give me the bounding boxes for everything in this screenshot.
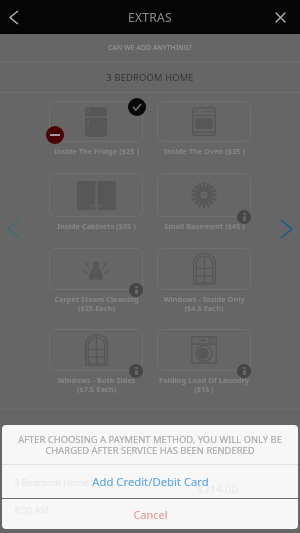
button[interactable]: Inside Cabinets ($35 ) — [49, 173, 143, 231]
staticText: AFTER CHOOSING A PAYMENT METHOD, YOU WIL… — [18, 433, 282, 456]
button[interactable]: More information — [237, 364, 251, 378]
button[interactable]: Remove — [46, 126, 64, 144]
button[interactable]: Inside The Oven ($35 ) — [157, 101, 251, 156]
staticText: Windows - Both Sides ($7.5 Each) — [57, 375, 136, 394]
staticText: Inside Cabinets ($35 ) — [57, 221, 136, 231]
staticText: Small Basement ($45 ) — [164, 221, 245, 231]
button[interactable]: More information — [49, 329, 143, 394]
staticText: Carpet Steam Cleaning ($25 Each) — [54, 294, 139, 313]
button[interactable]: More information — [157, 173, 251, 231]
button[interactable]: Next page — [273, 209, 300, 249]
staticText: 3 Bedroom Home — [14, 476, 89, 488]
button[interactable]: More information — [49, 248, 143, 313]
button[interactable]: 3 Bedroom Home — [2, 465, 298, 498]
button[interactable]: Selected — [49, 101, 143, 156]
staticText: Add Credit/Debit Card — [92, 474, 209, 489]
button[interactable]: More information — [129, 364, 143, 378]
button[interactable]: Back — [0, 0, 28, 34]
button[interactable]: Selected — [128, 98, 146, 116]
button[interactable]: Windows - Inside Only ($4.5 Each) — [157, 248, 251, 313]
staticText: 8:30 AM — [14, 504, 49, 516]
button[interactable]: 8:30 AM — [2, 499, 298, 529]
staticText: 3 BEDROOM HOME — [106, 71, 194, 84]
staticText: $214.00 — [197, 481, 238, 496]
staticText: Windows - Inside Only ($4.5 Each) — [163, 294, 245, 313]
staticText: Inside The Fridge ($25 ) — [54, 146, 139, 156]
staticText: EXTRAS — [128, 9, 172, 25]
staticText: Inside The Oven ($35 ) — [164, 146, 245, 156]
button[interactable]: More information — [157, 329, 251, 394]
staticText: CAN WE ADD ANYTHING? — [108, 43, 192, 52]
staticText: Cancel — [133, 507, 168, 522]
button[interactable]: More information — [237, 210, 251, 224]
staticText: Folding Load Of Laundry ($15 ) — [159, 375, 249, 394]
button[interactable]: More information — [129, 283, 143, 297]
button[interactable]: Previous page — [0, 209, 26, 249]
button[interactable]: Close — [261, 0, 300, 34]
